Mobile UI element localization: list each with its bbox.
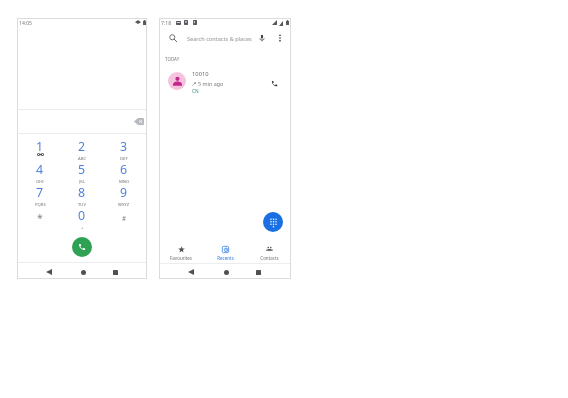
button[interactable]: Home [77,266,89,278]
button[interactable]: 8 [62,181,102,207]
staticText: ABC [78,156,87,161]
staticText: Favourites [170,255,192,261]
button[interactable]: Call back [268,77,280,89]
button[interactable]: 10010 [159,64,291,94]
button[interactable]: 7 [20,181,60,207]
staticText: 8 [78,184,86,201]
button[interactable]: Recent apps [109,266,121,278]
button[interactable]: Recents [203,245,247,262]
staticText: * [37,211,43,225]
staticText: 1 [36,138,44,155]
button[interactable]: Back [43,266,55,278]
button[interactable]: Contacts [247,245,291,262]
staticText: WXYZ [118,202,130,207]
staticText: 0 [78,207,86,224]
staticText: GHI [36,179,44,184]
button[interactable]: Open dialpad [263,212,283,232]
button[interactable]: * [20,204,60,230]
staticText: 10010 [192,70,209,78]
staticText: JKL [79,179,85,184]
staticText: 5 [78,161,86,178]
staticText: 4 [36,161,44,178]
staticText: Recents [217,255,234,261]
button[interactable]: 1 [20,135,60,161]
staticText: Contacts [260,255,279,261]
staticText: MNO [119,179,130,184]
button[interactable]: Voice search [256,32,268,44]
button[interactable]: 3 [104,135,144,161]
staticText: Search contacts & places [187,35,252,43]
staticText: PQRS [35,202,46,207]
staticText: 2 [78,138,86,155]
button[interactable]: Favourites [159,245,203,262]
staticText: 7:18 [161,20,172,27]
staticText: DEF [120,156,128,161]
button[interactable]: Home [220,266,232,278]
button[interactable]: Backspace [132,114,146,128]
button[interactable]: Recent apps [252,266,264,278]
button[interactable]: 9 [104,181,144,207]
button[interactable]: More options [274,32,286,44]
staticText: 5 min ago [198,80,224,87]
staticText: 7 [36,184,44,201]
button[interactable]: 5 [62,158,102,184]
button[interactable]: 2 [62,135,102,161]
button[interactable]: Call [72,237,92,257]
button[interactable]: Back [185,266,197,278]
staticText: 9 [120,184,128,201]
staticText: # [122,214,126,222]
staticText: TODAY [165,56,180,62]
button[interactable]: 4 [20,158,60,184]
button[interactable]: # [104,204,144,230]
button[interactable]: 6 [104,158,144,184]
button[interactable]: Search [167,32,179,44]
staticText: CN [192,88,199,95]
button[interactable]: 0 [62,204,102,230]
staticText: TUV [78,202,86,207]
staticText: 6 [120,161,128,178]
staticText: + [81,225,84,230]
staticText: 14:05 [19,20,33,27]
staticText: 3 [120,138,128,155]
